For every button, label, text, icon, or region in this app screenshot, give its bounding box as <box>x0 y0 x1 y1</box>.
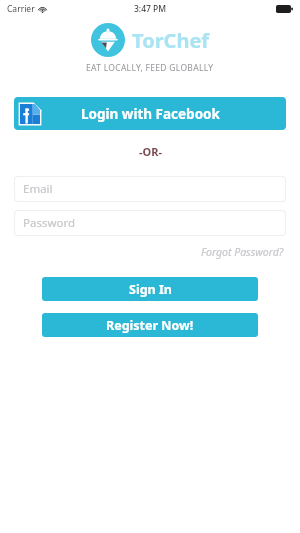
staticText: Sign In <box>129 281 172 298</box>
button[interactable]: Email <box>15 177 285 201</box>
button[interactable]: Password <box>15 211 285 235</box>
staticText: Carrier <box>7 3 35 15</box>
staticText: -OR- <box>139 144 162 159</box>
staticText: Login with Facebook <box>81 105 220 123</box>
staticText: Forgot Password? <box>201 245 284 259</box>
staticText: Register Now! <box>106 317 194 334</box>
other: Facebook <box>15 99 45 129</box>
button[interactable]: Login with Facebook <box>14 97 286 130</box>
staticText: Email <box>23 181 53 197</box>
button[interactable]: Register Now! <box>42 313 258 337</box>
staticText: EAT LOCALLY, FEED GLOBALLY <box>86 62 214 74</box>
staticText: TorChef <box>132 27 210 54</box>
staticText: Password <box>23 215 76 231</box>
button[interactable]: Forgot Password? <box>199 243 286 261</box>
button[interactable]: Sign In <box>42 277 258 301</box>
staticText: 3:47 PM <box>134 3 167 15</box>
